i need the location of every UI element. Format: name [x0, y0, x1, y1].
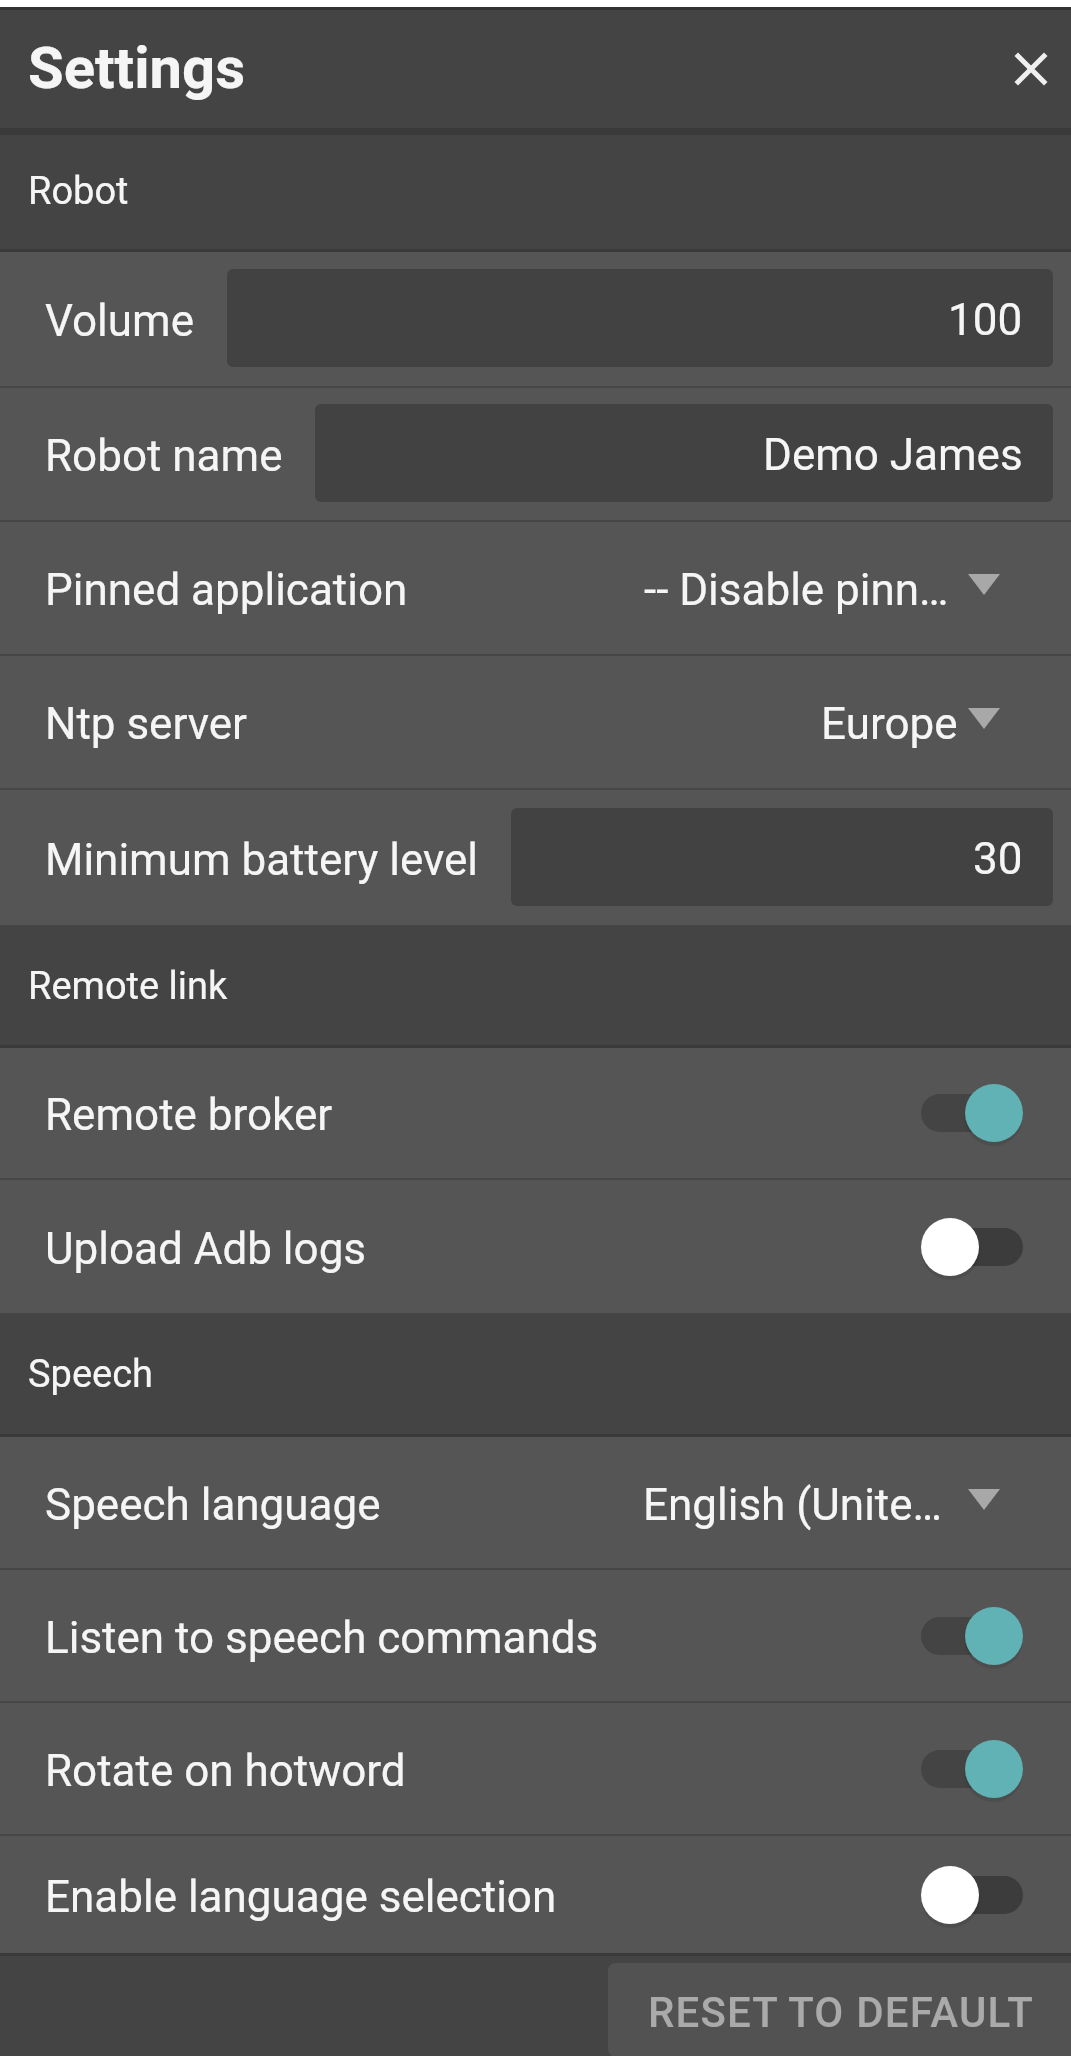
staticText: Robot — [28, 169, 129, 214]
staticText: RESET TO DEFAULT — [648, 1988, 1035, 2037]
staticText: Listen to speech commands — [45, 1612, 599, 1664]
staticText: Pinned application — [45, 564, 408, 616]
staticText: English (Unite… — [643, 1479, 943, 1531]
staticText: Volume — [45, 295, 194, 347]
button[interactable]: Listen to speech commands — [0, 1570, 1071, 1701]
button[interactable]: Minimum battery level — [0, 790, 1071, 925]
staticText: Speech language — [45, 1479, 381, 1531]
button[interactable]: Robot name — [0, 388, 1071, 520]
staticText: Europe — [821, 698, 958, 750]
staticText: Rotate on hotword — [45, 1745, 406, 1797]
staticText: -- Disable pinn… — [644, 564, 949, 616]
button[interactable]: Pinned application — [0, 522, 1071, 654]
button[interactable]: Volume — [0, 252, 1071, 386]
staticText: 100 — [948, 294, 1023, 346]
button[interactable]: Ntp server — [0, 656, 1071, 788]
staticText: Remote broker — [45, 1089, 333, 1141]
button[interactable]: RESET TO DEFAULT — [608, 1963, 1071, 2056]
staticText: Minimum battery level — [45, 834, 479, 886]
staticText: Enable language selection — [45, 1871, 557, 1923]
button[interactable]: Close — [999, 37, 1063, 101]
button[interactable]: Remote broker — [0, 1048, 1071, 1178]
button[interactable]: Rotate on hotword — [0, 1703, 1071, 1834]
button[interactable]: Enable language selection — [0, 1836, 1071, 1953]
staticText: Upload Adb logs — [45, 1223, 367, 1275]
staticText: Remote link — [28, 964, 228, 1009]
staticText: Settings — [28, 34, 246, 102]
staticText: Robot name — [45, 430, 283, 482]
staticText: 30 — [973, 833, 1023, 885]
button[interactable]: Upload Adb logs — [0, 1180, 1071, 1313]
button[interactable]: Speech language — [0, 1437, 1071, 1568]
staticText: Ntp server — [45, 698, 248, 750]
staticText: Speech — [28, 1352, 154, 1397]
staticText: Demo James — [763, 429, 1023, 481]
